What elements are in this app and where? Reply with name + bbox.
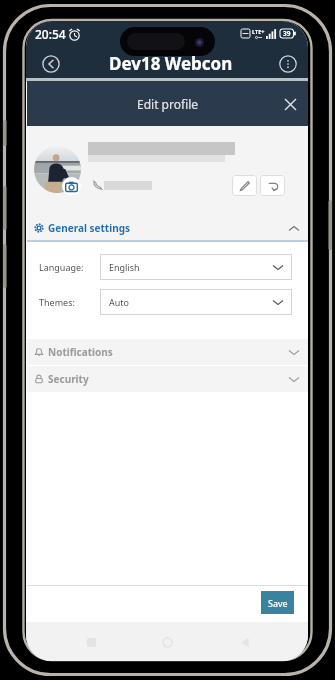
button[interactable]: Undo xyxy=(260,175,285,196)
button[interactable]: Edit xyxy=(232,175,257,196)
staticText: Security xyxy=(48,372,89,386)
button[interactable]: Back xyxy=(232,630,256,654)
button[interactable]: Security xyxy=(27,366,308,392)
button[interactable]: Auto xyxy=(100,289,292,315)
button[interactable]: Back xyxy=(41,54,61,74)
button[interactable]: Recents xyxy=(79,630,103,654)
staticText: General settings xyxy=(48,221,131,235)
staticText: 39 xyxy=(283,29,291,38)
staticText: Themes: xyxy=(39,296,100,308)
staticText: LTE+ xyxy=(252,28,265,35)
staticText: Language: xyxy=(39,261,100,273)
button[interactable]: General settings xyxy=(27,216,308,240)
button[interactable]: More options xyxy=(278,54,298,74)
staticText: Notifications xyxy=(48,345,113,359)
staticText: Save xyxy=(268,597,288,609)
button[interactable]: English xyxy=(100,254,292,280)
button[interactable]: Save xyxy=(261,591,294,614)
staticText: Dev18 Webcon xyxy=(109,52,233,75)
button[interactable]: Change photo xyxy=(62,177,81,196)
staticText: Auto xyxy=(109,296,130,308)
button[interactable]: Notifications xyxy=(27,339,308,365)
staticText: Edit profile xyxy=(137,96,199,112)
button[interactable]: Close xyxy=(279,93,301,115)
staticText: English xyxy=(109,261,140,273)
staticText: 20:54 xyxy=(35,26,66,42)
button[interactable]: Home xyxy=(155,630,179,654)
